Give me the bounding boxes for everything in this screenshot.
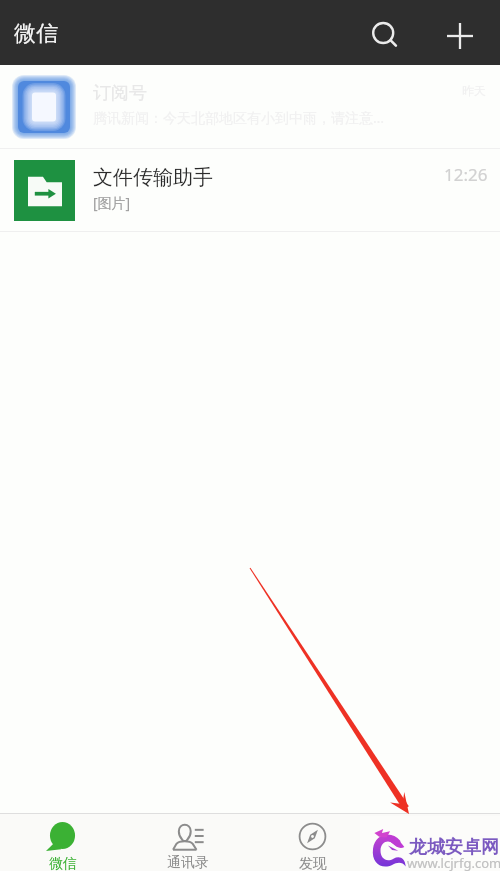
staticText: 我	[431, 854, 445, 871]
staticText: 昨天	[462, 83, 486, 98]
staticText: 文件传输助手	[93, 165, 213, 190]
staticText: 发现	[299, 855, 327, 871]
button[interactable]: 我	[375, 814, 500, 871]
staticText: 通讯录	[167, 854, 209, 871]
button[interactable]: 订阅号	[0, 65, 500, 149]
staticText: 12:26	[444, 163, 488, 186]
staticText: 微信	[49, 855, 77, 871]
staticText: www.lcjrfg.com	[407, 854, 500, 871]
button[interactable]: 通讯录	[125, 814, 250, 871]
staticText: 腾讯新闻：今天北部地区有小到中雨，请注意…	[93, 108, 385, 127]
staticText: 微信	[14, 20, 58, 48]
staticText: 龙城安卓网	[409, 836, 499, 859]
button[interactable]: 发现	[250, 814, 375, 871]
button[interactable]: 微信	[0, 814, 125, 871]
button[interactable]: Add	[420, 0, 500, 65]
button[interactable]: Search	[350, 0, 420, 65]
staticText: [图片]	[93, 193, 131, 212]
staticText: 订阅号	[93, 82, 147, 105]
button[interactable]: 文件传输助手	[0, 149, 500, 232]
